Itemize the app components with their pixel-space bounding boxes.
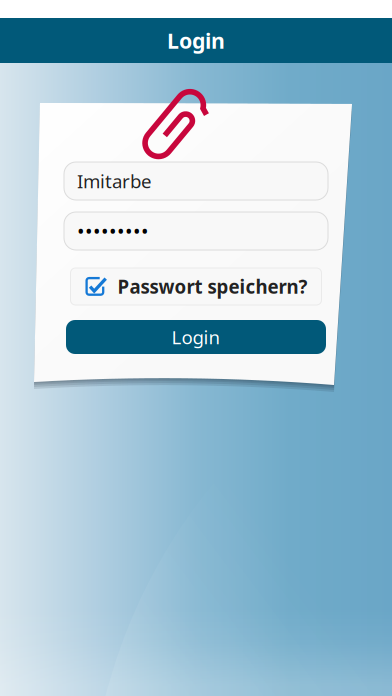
- staticText: Login: [171, 325, 220, 349]
- button[interactable]: Login: [66, 320, 326, 354]
- staticText: •••••••••: [77, 218, 149, 244]
- staticText: Imitarbe: [77, 169, 152, 193]
- staticText: Login: [167, 26, 225, 55]
- staticText: Passwort speichern?: [117, 274, 307, 299]
- button[interactable]: Passwort speichern?: [70, 268, 321, 305]
